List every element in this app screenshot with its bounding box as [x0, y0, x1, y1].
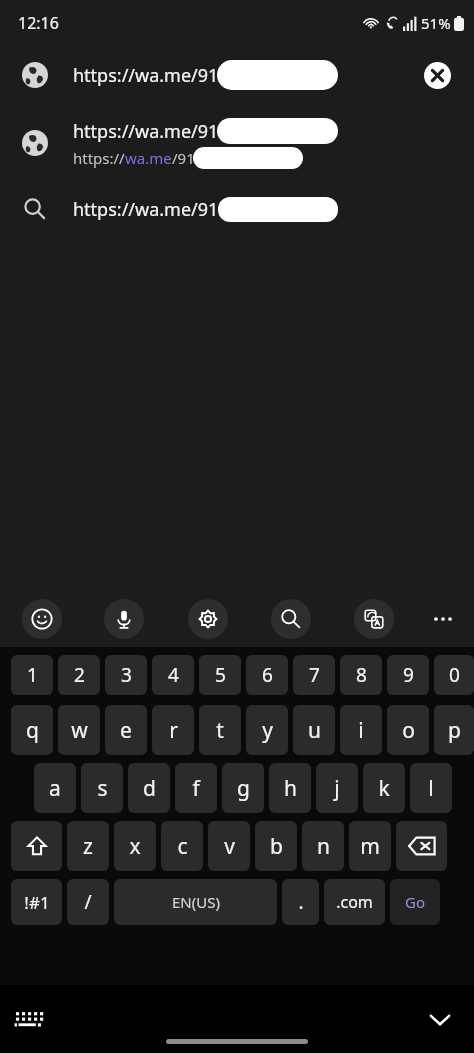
- button[interactable]: a: [34, 763, 76, 813]
- staticText: /: [84, 889, 92, 915]
- button[interactable]: https://wa.me/91: [0, 182, 474, 236]
- staticText: r: [169, 716, 178, 745]
- button[interactable]: Search: [271, 599, 311, 639]
- staticText: 0: [449, 662, 460, 688]
- button[interactable]: t: [199, 705, 241, 755]
- button[interactable]: https://wa.me/91: [0, 104, 474, 182]
- staticText: h: [284, 774, 297, 803]
- button[interactable]: 2: [58, 655, 100, 695]
- button[interactable]: Backspace: [396, 821, 447, 871]
- button[interactable]: 6: [246, 655, 288, 695]
- staticText: https://: [73, 148, 125, 168]
- button[interactable]: u: [293, 705, 335, 755]
- staticText: https://wa.me/91: [73, 63, 219, 88]
- button[interactable]: l: [410, 763, 452, 813]
- button[interactable]: m: [349, 821, 391, 871]
- staticText: f: [192, 774, 200, 803]
- staticText: 7: [309, 662, 320, 688]
- staticText: z: [83, 832, 93, 861]
- staticText: k: [378, 774, 390, 803]
- button[interactable]: https://wa.me/91: [0, 46, 474, 104]
- button[interactable]: 7: [293, 655, 335, 695]
- button[interactable]: w: [58, 705, 100, 755]
- button[interactable]: p: [434, 705, 474, 755]
- staticText: n: [317, 832, 330, 861]
- staticText: 1: [27, 662, 38, 688]
- button[interactable]: c: [161, 821, 203, 871]
- staticText: x: [129, 832, 141, 861]
- button[interactable]: x: [114, 821, 156, 871]
- staticText: .com: [336, 891, 373, 913]
- staticText: 5: [215, 662, 226, 688]
- button[interactable]: EN(US): [114, 879, 277, 925]
- button[interactable]: d: [128, 763, 170, 813]
- button[interactable]: Voice input: [104, 599, 144, 639]
- button[interactable]: 3: [105, 655, 147, 695]
- staticText: 9: [403, 662, 414, 688]
- button[interactable]: 1: [11, 655, 53, 695]
- button[interactable]: y: [246, 705, 288, 755]
- button[interactable]: Shift: [11, 821, 62, 871]
- button[interactable]: j: [316, 763, 358, 813]
- button[interactable]: h: [269, 763, 311, 813]
- staticText: 2: [74, 662, 85, 688]
- button[interactable]: o: [387, 705, 429, 755]
- button[interactable]: 8: [340, 655, 382, 695]
- staticText: s: [97, 774, 108, 803]
- staticText: wa.me: [125, 148, 172, 168]
- staticText: m: [360, 832, 380, 861]
- button[interactable]: f: [175, 763, 217, 813]
- button[interactable]: 4: [152, 655, 194, 695]
- staticText: 12:16: [18, 12, 59, 34]
- button[interactable]: Settings: [188, 599, 228, 639]
- staticText: g: [237, 774, 250, 803]
- button[interactable]: Change keyboard: [8, 999, 48, 1039]
- staticText: Go: [405, 892, 425, 912]
- button[interactable]: v: [208, 821, 250, 871]
- staticText: https://wa.me/91: [73, 197, 219, 222]
- staticText: a: [49, 774, 61, 803]
- button[interactable]: 9: [387, 655, 429, 695]
- button[interactable]: More options: [424, 600, 462, 638]
- staticText: i: [358, 716, 364, 745]
- staticText: 8: [356, 662, 367, 688]
- button[interactable]: /: [67, 879, 109, 925]
- staticText: w: [71, 716, 88, 745]
- staticText: v: [224, 832, 235, 861]
- button[interactable]: b: [255, 821, 297, 871]
- staticText: d: [143, 774, 156, 803]
- button[interactable]: Clear: [424, 62, 451, 89]
- button[interactable]: q: [11, 705, 53, 755]
- button[interactable]: r: [152, 705, 194, 755]
- staticText: 3: [121, 662, 132, 688]
- button[interactable]: s: [81, 763, 123, 813]
- button[interactable]: 5: [199, 655, 241, 695]
- staticText: j: [334, 774, 340, 803]
- button[interactable]: Emoji: [22, 599, 62, 639]
- button[interactable]: Go: [390, 879, 440, 925]
- staticText: b: [270, 832, 283, 861]
- staticText: y: [262, 716, 273, 745]
- staticText: c: [177, 832, 188, 861]
- button[interactable]: k: [363, 763, 405, 813]
- button[interactable]: n: [302, 821, 344, 871]
- staticText: 51%: [421, 13, 451, 33]
- staticText: t: [216, 716, 224, 745]
- staticText: o: [402, 716, 415, 745]
- staticText: 6: [262, 662, 273, 688]
- button[interactable]: Translate: [354, 599, 394, 639]
- button[interactable]: .: [282, 879, 319, 925]
- staticText: !#1: [24, 891, 50, 914]
- button[interactable]: z: [67, 821, 109, 871]
- staticText: .: [298, 889, 304, 915]
- button[interactable]: g: [222, 763, 264, 813]
- staticText: /91: [172, 148, 195, 168]
- button[interactable]: Hide keyboard: [420, 999, 460, 1039]
- button[interactable]: i: [340, 705, 382, 755]
- button[interactable]: .com: [324, 879, 385, 925]
- button[interactable]: !#1: [11, 879, 62, 925]
- staticText: l: [428, 774, 434, 803]
- staticText: EN(US): [172, 892, 220, 912]
- button[interactable]: 0: [434, 655, 474, 695]
- button[interactable]: e: [105, 705, 147, 755]
